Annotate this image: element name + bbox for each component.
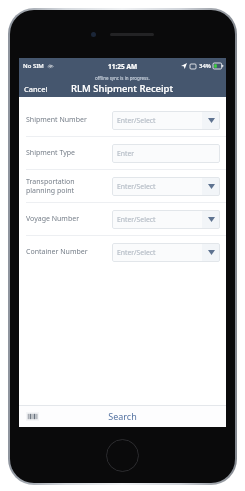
staticText: Enter/Select [117, 182, 156, 191]
staticText: Cancel [24, 84, 48, 94]
staticText: Search [108, 410, 137, 422]
button[interactable]: Open Shipment Number list [202, 111, 220, 130]
button[interactable]: Scan barcode [23, 409, 41, 423]
staticText: Voyage Number [26, 214, 112, 224]
staticText: Shipment Type [26, 148, 112, 158]
button[interactable]: Search [94, 407, 151, 425]
button[interactable]: Open Transportation planning point list [202, 177, 220, 196]
staticText: offline sync is in progress. [95, 75, 150, 81]
staticText: No SIM [23, 62, 44, 70]
staticText: Container Number [26, 247, 112, 257]
button[interactable]: Voyage Number [19, 203, 226, 235]
staticText: RLM Shipment Receipt [71, 82, 174, 95]
button[interactable]: Container Number [19, 236, 226, 268]
staticText: Enter/Select [117, 215, 156, 224]
button[interactable]: Transportation planning point [19, 170, 226, 202]
button[interactable]: Shipment Type [19, 137, 226, 169]
staticText: Enter/Select [117, 248, 156, 257]
staticText: Transportation planning point [26, 177, 112, 195]
staticText: Shipment Number [26, 115, 112, 125]
button[interactable]: Open Container Number list [202, 243, 220, 262]
staticText: Enter/Select [117, 116, 156, 125]
staticText: Enter [117, 149, 135, 158]
staticText: 11:25 AM [108, 62, 138, 71]
button[interactable]: Open Voyage Number list [202, 210, 220, 229]
staticText: 34% [199, 62, 211, 70]
button[interactable]: Cancel [19, 82, 53, 96]
button[interactable]: Shipment Number [19, 104, 226, 136]
